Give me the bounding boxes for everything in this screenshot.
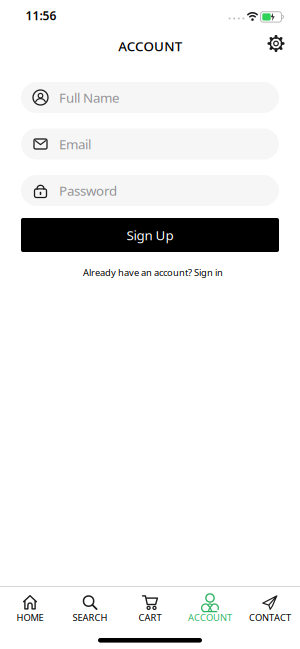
staticText: HOME [16,611,43,624]
button[interactable]: Email [21,128,279,159]
staticText: SEARCH [72,611,107,624]
button[interactable]: ACCOUNT [180,587,240,631]
staticText: Email [59,135,91,153]
staticText: Sign Up [126,226,173,244]
staticText: ACCOUNT [118,37,182,55]
button[interactable]: Already have an account? Sign in [83,266,223,279]
staticText: CART [138,611,161,624]
button[interactable]: CART [120,587,180,631]
button[interactable] [267,35,284,52]
button[interactable]: CONTACT [240,587,300,631]
button[interactable]: Sign Up [21,218,279,252]
staticText: CONTACT [249,611,291,624]
staticText: Full Name [59,89,120,106]
staticText: Already have an account? Sign in [83,266,223,279]
staticText: Password [59,182,117,199]
staticText: ACCOUNT [188,611,232,624]
button[interactable]: Full Name [21,82,279,113]
button[interactable]: SEARCH [60,587,120,631]
button[interactable]: Password [21,175,279,206]
staticText: 11:56 [25,7,56,23]
button[interactable]: HOME [0,587,60,631]
